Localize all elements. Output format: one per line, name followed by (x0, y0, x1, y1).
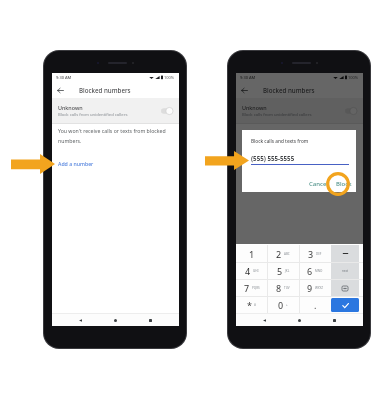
staticText: Block calls from unidentified callers (58, 112, 128, 118)
staticText: 9:30 AM (240, 75, 256, 80)
button[interactable]: Backspace (331, 245, 359, 262)
staticText: * (247, 299, 252, 311)
staticText: Unknown (242, 104, 267, 111)
button[interactable]: 7 (236, 280, 267, 296)
staticText: Block calls from unidentified callers (242, 112, 312, 118)
button[interactable]: Unknown (236, 98, 363, 124)
button[interactable]: 3 (299, 245, 331, 262)
staticText: 1 (249, 248, 255, 260)
staticText: 100% (164, 75, 175, 80)
staticText: 4 (245, 265, 251, 277)
staticText: # (254, 303, 256, 307)
staticText: Block (336, 180, 352, 188)
button[interactable]: 0 (267, 297, 299, 313)
button[interactable]: Back (52, 82, 68, 98)
button[interactable]: 5 (267, 263, 299, 279)
staticText: You won't receive calls or texts from bl… (58, 127, 166, 144)
staticText: Blocked numbers (263, 86, 315, 94)
button[interactable]: Back (236, 82, 252, 98)
staticText: . (314, 299, 317, 311)
button[interactable]: Unknown callers toggle (345, 105, 358, 117)
button[interactable]: Cancel (306, 177, 332, 191)
staticText: 5 (277, 265, 283, 277)
button[interactable]: Add a number (58, 160, 94, 167)
staticText: GHI (253, 269, 259, 273)
staticText: MNO (315, 269, 323, 273)
button[interactable]: Back (74, 314, 87, 326)
staticText: Unknown (58, 104, 83, 111)
staticText: ABC (284, 252, 290, 256)
button[interactable]: 2 (267, 245, 299, 262)
staticText: Add a number (58, 160, 94, 167)
button[interactable]: 6 (299, 263, 331, 279)
staticText: 6 (307, 265, 313, 277)
button[interactable]: 4 (236, 263, 267, 279)
staticText: 3 (308, 248, 314, 260)
staticText: JKL (285, 269, 290, 273)
button[interactable]: Unknown callers toggle (161, 105, 174, 117)
staticText: Cancel (309, 180, 329, 188)
staticText: next (342, 269, 349, 273)
button[interactable]: Unknown (52, 98, 179, 124)
staticText: (555) 555-5555 (251, 154, 295, 162)
button[interactable]: Recent apps (144, 314, 157, 326)
button[interactable]: Recent apps (328, 314, 341, 326)
button[interactable]: 9 (299, 280, 331, 296)
staticText: 100% (348, 75, 359, 80)
staticText: DEF (316, 252, 322, 256)
button[interactable]: 1 (236, 245, 267, 262)
button[interactable]: * (236, 297, 267, 313)
staticText: Blocked numbers (79, 86, 131, 94)
staticText: 0 (278, 299, 284, 311)
staticText: 2 (276, 248, 282, 260)
staticText: 8 (276, 282, 282, 294)
button[interactable]: Next (331, 263, 359, 279)
button[interactable]: . (299, 297, 331, 313)
staticText: 7 (244, 282, 250, 294)
button[interactable]: Block (333, 177, 355, 191)
button[interactable]: 8 (267, 280, 299, 296)
button[interactable]: Switch keyboard (331, 280, 359, 296)
button[interactable]: Back (258, 314, 271, 326)
button[interactable]: Home (293, 314, 306, 326)
staticText: WXYZ (315, 286, 323, 290)
button[interactable]: Done (331, 298, 359, 312)
staticText: Block calls and texts from (251, 138, 309, 144)
staticText: TUV (284, 286, 290, 290)
staticText: 9 (307, 282, 313, 294)
staticText: + (286, 303, 288, 307)
button[interactable]: Home (109, 314, 122, 326)
staticText: 9:30 AM (56, 75, 72, 80)
staticText: PQRS (252, 286, 260, 290)
